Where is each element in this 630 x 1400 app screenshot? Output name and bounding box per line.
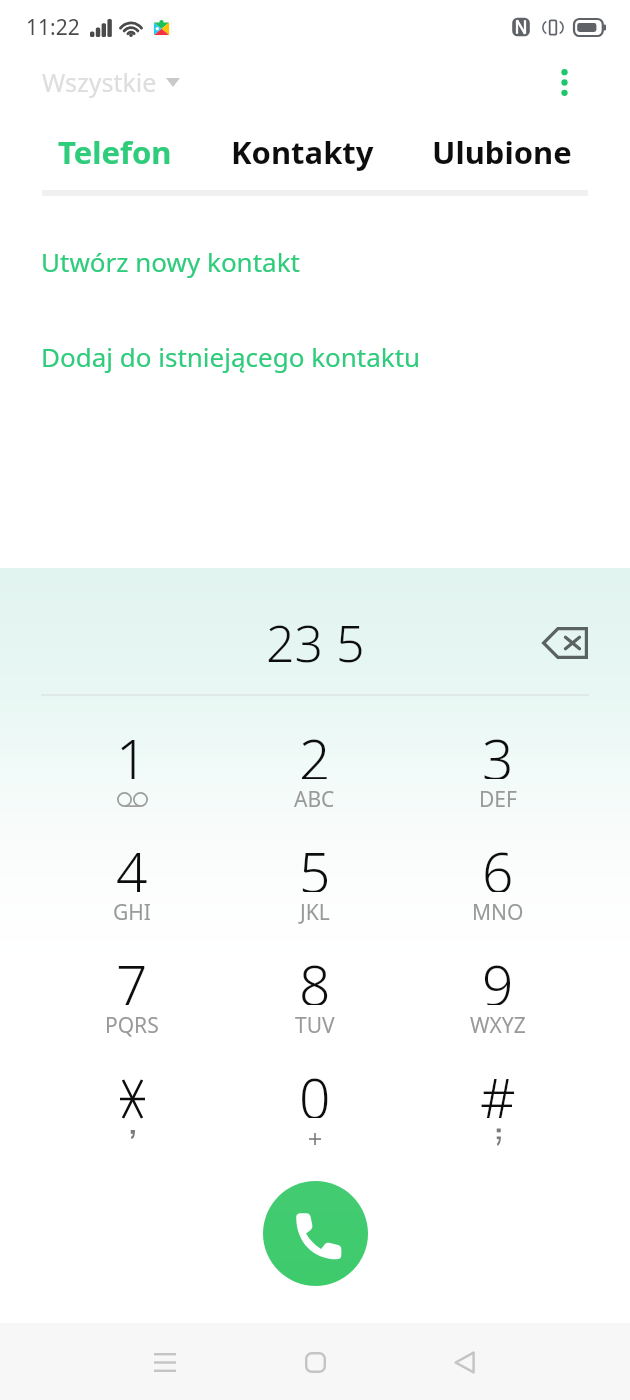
staticText: Telefon	[58, 131, 172, 173]
staticText: Ulubione	[432, 131, 572, 173]
staticText: 4	[116, 834, 148, 892]
staticText: 3	[482, 721, 514, 779]
staticText: Kontakty	[231, 131, 374, 173]
staticText: 7	[116, 947, 148, 1005]
button[interactable]: Ulubione	[432, 114, 572, 190]
staticText: PQRS	[105, 1011, 159, 1040]
staticText: 5	[299, 834, 331, 892]
staticText: #	[480, 1060, 516, 1118]
button[interactable]: 6	[406, 834, 589, 947]
staticText: 2	[299, 721, 331, 779]
staticText: WXYZ	[470, 1011, 526, 1040]
staticText: JKL	[300, 898, 330, 927]
button[interactable]: Recents	[133, 1330, 197, 1394]
staticText: GHI	[113, 898, 151, 927]
staticText: 6	[482, 834, 514, 892]
button[interactable]: Kontakty	[231, 114, 374, 190]
button[interactable]: 1	[41, 721, 223, 834]
staticText: DEF	[479, 785, 517, 814]
button[interactable]	[41, 1060, 223, 1173]
staticText: TUV	[295, 1011, 335, 1040]
button[interactable]: Back	[432, 1330, 496, 1394]
button[interactable]: Utwórz nowy kontakt	[0, 236, 630, 287]
button[interactable]: Dodaj do istniejącego kontaktu	[0, 331, 630, 382]
button[interactable]: Backspace	[533, 612, 595, 674]
staticText: ABC	[294, 785, 335, 814]
button[interactable]: #	[406, 1060, 589, 1173]
button[interactable]: 7	[41, 947, 223, 1060]
staticText: 11:22	[26, 13, 80, 42]
button[interactable]: Wszystkie	[30, 57, 192, 107]
button[interactable]: Telefon	[58, 114, 172, 190]
staticText: 9	[482, 947, 514, 1005]
staticText: 0	[299, 1060, 331, 1118]
staticText: Utwórz nowy kontakt	[41, 244, 300, 279]
button[interactable]: 9	[406, 947, 589, 1060]
staticText: Wszystkie	[42, 65, 157, 99]
button[interactable]: 5	[223, 834, 406, 947]
button[interactable]: 8	[223, 947, 406, 1060]
staticText: 8	[299, 947, 331, 1005]
staticText: 1	[116, 721, 148, 779]
staticText: Dodaj do istniejącego kontaktu	[41, 339, 421, 374]
button[interactable]: 2	[223, 721, 406, 834]
button[interactable]: More options	[542, 60, 586, 104]
button[interactable]: 0	[223, 1060, 406, 1173]
staticText: MNO	[472, 898, 524, 927]
button[interactable]: 3	[406, 721, 589, 834]
button[interactable]: 4	[41, 834, 223, 947]
button[interactable]: Home	[283, 1330, 347, 1394]
staticText: 23 5	[266, 609, 365, 677]
button[interactable]: Call	[263, 1181, 368, 1286]
